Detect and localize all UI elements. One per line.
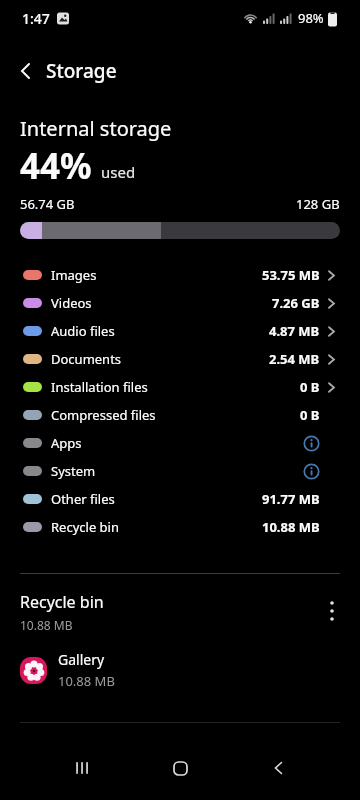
staticText: Images: [51, 266, 97, 284]
button[interactable]: Compressed files: [0, 401, 360, 429]
staticText: 10.88 MB: [20, 617, 73, 633]
button[interactable]: [256, 746, 300, 790]
button[interactable]: [60, 746, 104, 790]
staticText: Recycle bin: [20, 591, 104, 613]
staticText: 4.87 MB: [269, 322, 320, 340]
staticText: Audio files: [51, 322, 115, 340]
staticText: Compressed files: [51, 406, 156, 424]
button[interactable]: Images: [0, 261, 360, 289]
staticText: Documents: [51, 350, 122, 368]
button[interactable]: [312, 591, 352, 631]
button[interactable]: Documents: [0, 345, 360, 373]
staticText: Gallery: [58, 650, 105, 669]
staticText: Other files: [51, 490, 115, 508]
staticText: 98%: [298, 9, 324, 27]
button[interactable]: [158, 746, 202, 790]
staticText: 10.88 MB: [262, 518, 320, 536]
staticText: Internal storage: [20, 115, 172, 142]
staticText: 53.75 MB: [262, 266, 320, 284]
staticText: 7.26 GB: [272, 294, 320, 312]
button[interactable]: Gallery: [0, 650, 360, 690]
button[interactable]: [6, 51, 46, 91]
staticText: used: [101, 162, 136, 182]
staticText: Recycle bin: [51, 518, 119, 536]
button[interactable]: Videos: [0, 289, 360, 317]
staticText: 1:47: [22, 9, 50, 28]
button[interactable]: Other files: [0, 485, 360, 513]
staticText: 0 B: [300, 378, 320, 396]
staticText: 0 B: [300, 406, 320, 424]
staticText: 56.74 GB: [20, 195, 75, 213]
staticText: Apps: [51, 434, 82, 452]
button[interactable]: Audio files: [0, 317, 360, 345]
button[interactable]: Recycle bin: [0, 513, 360, 541]
staticText: Videos: [51, 294, 92, 312]
button[interactable]: System: [0, 457, 360, 485]
staticText: Storage: [46, 58, 117, 84]
staticText: Installation files: [51, 378, 148, 396]
staticText: 2.54 MB: [269, 350, 320, 368]
staticText: 91.77 MB: [262, 490, 320, 508]
staticText: 44%: [20, 142, 92, 190]
staticText: 128 GB: [296, 195, 340, 213]
staticText: 10.88 MB: [58, 672, 115, 690]
staticText: System: [51, 462, 96, 480]
button[interactable]: Apps: [0, 429, 360, 457]
button[interactable]: Installation files: [0, 373, 360, 401]
